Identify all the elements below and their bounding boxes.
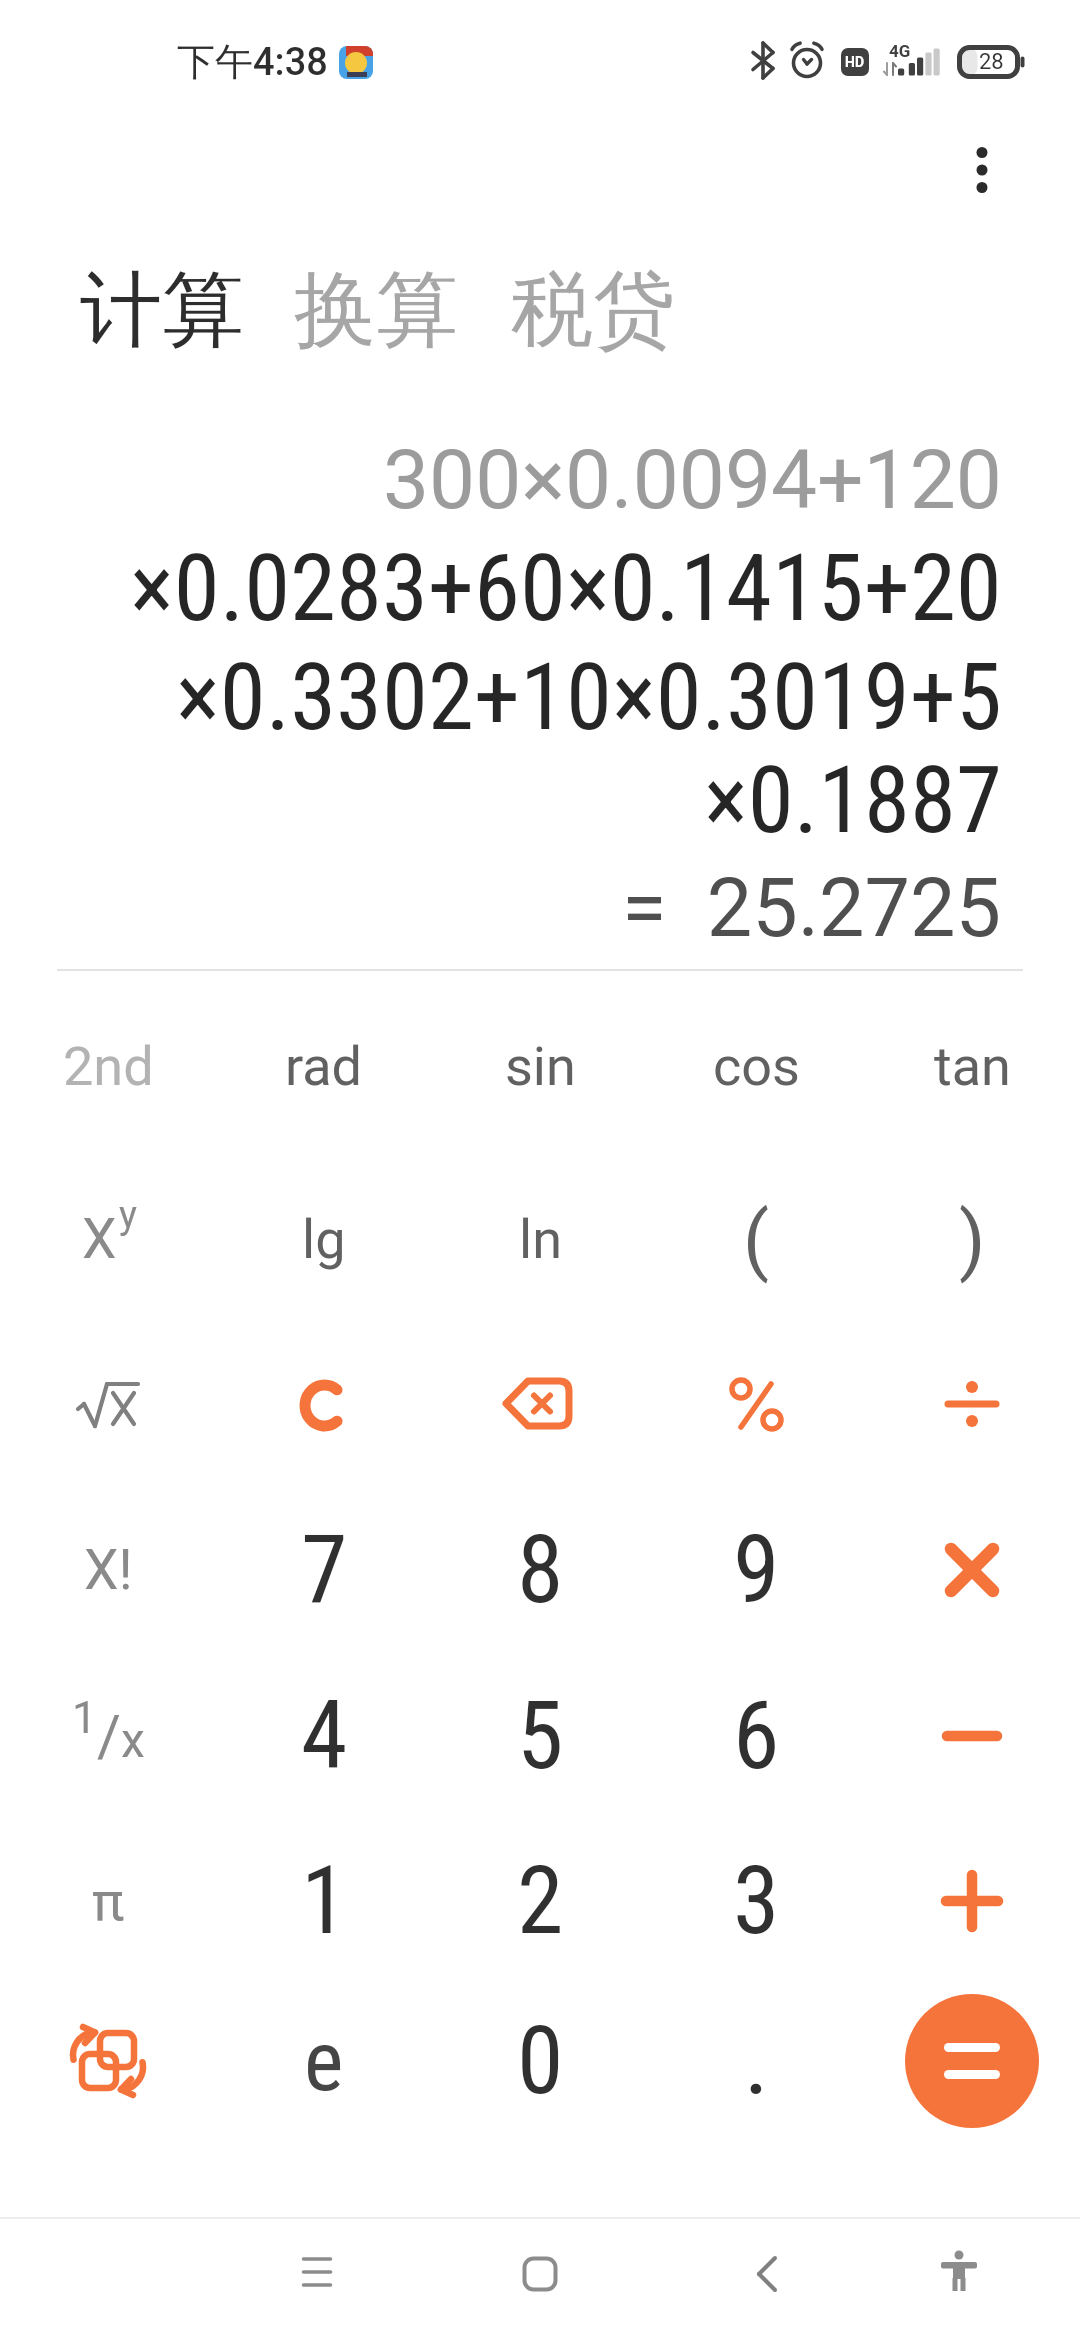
staticText: 3 bbox=[733, 1846, 780, 1956]
staticText: y bbox=[119, 1193, 137, 1238]
button[interactable]: . bbox=[654, 1985, 858, 2137]
staticText: ( bbox=[743, 1195, 770, 1284]
staticText: lg bbox=[302, 1208, 346, 1271]
button[interactable] bbox=[946, 125, 1018, 215]
staticText: / bbox=[97, 1702, 121, 1770]
button[interactable] bbox=[654, 1329, 858, 1481]
button[interactable]: ) bbox=[870, 1163, 1074, 1315]
button[interactable]: cos bbox=[654, 990, 858, 1142]
button[interactable] bbox=[870, 1825, 1074, 1977]
staticText: 9 bbox=[733, 1515, 780, 1625]
button[interactable] bbox=[870, 1985, 1074, 2137]
button[interactable]: 2nd bbox=[6, 990, 210, 1142]
staticText: rad bbox=[285, 1035, 363, 1098]
staticText: sin bbox=[505, 1035, 576, 1098]
staticText: 下午4:38 bbox=[177, 38, 328, 86]
button[interactable]: 8 bbox=[438, 1494, 642, 1646]
staticText: 0 bbox=[517, 2006, 564, 2116]
button[interactable]: 9 bbox=[654, 1494, 858, 1646]
staticText: . bbox=[744, 2006, 769, 2116]
staticText: 2 bbox=[517, 1846, 564, 1956]
staticText: 6 bbox=[733, 1681, 780, 1791]
staticText: ln bbox=[519, 1208, 562, 1271]
button[interactable]: lg bbox=[222, 1163, 426, 1315]
button[interactable]: ln bbox=[438, 1163, 642, 1315]
staticText: cos bbox=[713, 1035, 800, 1098]
button[interactable]: 计算 bbox=[62, 245, 262, 375]
button[interactable]: sin bbox=[438, 990, 642, 1142]
staticText: ) bbox=[959, 1195, 986, 1284]
button[interactable] bbox=[870, 1494, 1074, 1646]
button[interactable] bbox=[870, 1660, 1074, 1812]
button[interactable] bbox=[480, 2224, 600, 2324]
staticText: 4 bbox=[301, 1681, 348, 1791]
button[interactable]: rad bbox=[222, 990, 426, 1142]
button[interactable]: tan bbox=[870, 990, 1074, 1142]
staticText: HD bbox=[845, 54, 865, 70]
button[interactable]: 4 bbox=[222, 1660, 426, 1812]
button[interactable]: 0 bbox=[438, 1985, 642, 2137]
staticText: X! bbox=[84, 1538, 133, 1602]
button[interactable]: 6 bbox=[654, 1660, 858, 1812]
staticText: 2nd bbox=[63, 1035, 154, 1098]
staticText: π bbox=[92, 1870, 125, 1933]
staticText: 8 bbox=[517, 1515, 564, 1625]
button[interactable]: 换算 bbox=[276, 245, 476, 375]
button[interactable] bbox=[257, 2222, 377, 2322]
button[interactable] bbox=[6, 1329, 210, 1481]
staticText: 计算 bbox=[80, 259, 244, 362]
staticText: 7 bbox=[301, 1515, 348, 1625]
button[interactable]: ( bbox=[654, 1163, 858, 1315]
staticText: 1 bbox=[301, 1846, 348, 1956]
staticText: x bbox=[121, 1712, 145, 1768]
button[interactable]: 1 bbox=[222, 1825, 426, 1977]
button[interactable] bbox=[904, 2221, 1014, 2321]
button[interactable]: X! bbox=[6, 1494, 210, 1646]
staticText: 28 bbox=[979, 49, 1004, 75]
staticText: ×0.1887 bbox=[704, 746, 1002, 855]
button[interactable]: 7 bbox=[222, 1494, 426, 1646]
button[interactable]: 1 bbox=[6, 1660, 210, 1812]
button[interactable] bbox=[870, 1329, 1074, 1481]
button[interactable] bbox=[6, 1985, 210, 2137]
button[interactable]: 5 bbox=[438, 1660, 642, 1812]
button[interactable] bbox=[438, 1329, 642, 1481]
staticText: = 25.2725 bbox=[622, 861, 1002, 956]
staticText: tan bbox=[934, 1035, 1011, 1098]
staticText: ×0.3302+10×0.3019+5 bbox=[176, 643, 1002, 752]
button[interactable] bbox=[222, 1329, 426, 1481]
staticText: 换算 bbox=[294, 259, 458, 362]
staticText: 5 bbox=[517, 1681, 564, 1791]
staticText: ×0.0283+60×0.1415+20 bbox=[130, 534, 1002, 643]
staticText: 1 bbox=[72, 1692, 97, 1744]
staticText: 300×0.0094+120 bbox=[383, 432, 1002, 528]
staticText: X bbox=[82, 1207, 117, 1271]
button[interactable]: X bbox=[6, 1163, 210, 1315]
staticText: e bbox=[304, 2012, 344, 2110]
button[interactable]: 税贷 bbox=[493, 245, 693, 375]
staticText: 税贷 bbox=[511, 259, 675, 362]
button[interactable] bbox=[706, 2224, 826, 2324]
button[interactable]: 3 bbox=[654, 1825, 858, 1977]
button[interactable]: 2 bbox=[438, 1825, 642, 1977]
button[interactable]: e bbox=[222, 1985, 426, 2137]
staticText: 4G bbox=[889, 41, 911, 61]
button[interactable]: π bbox=[6, 1825, 210, 1977]
